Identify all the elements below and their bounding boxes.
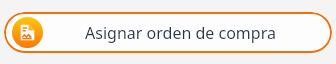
- staticText: Asignar orden de compra: [85, 22, 276, 44]
- button[interactable]: Purchase order document: [4, 12, 332, 53]
- other: Purchase order document: [12, 17, 43, 48]
